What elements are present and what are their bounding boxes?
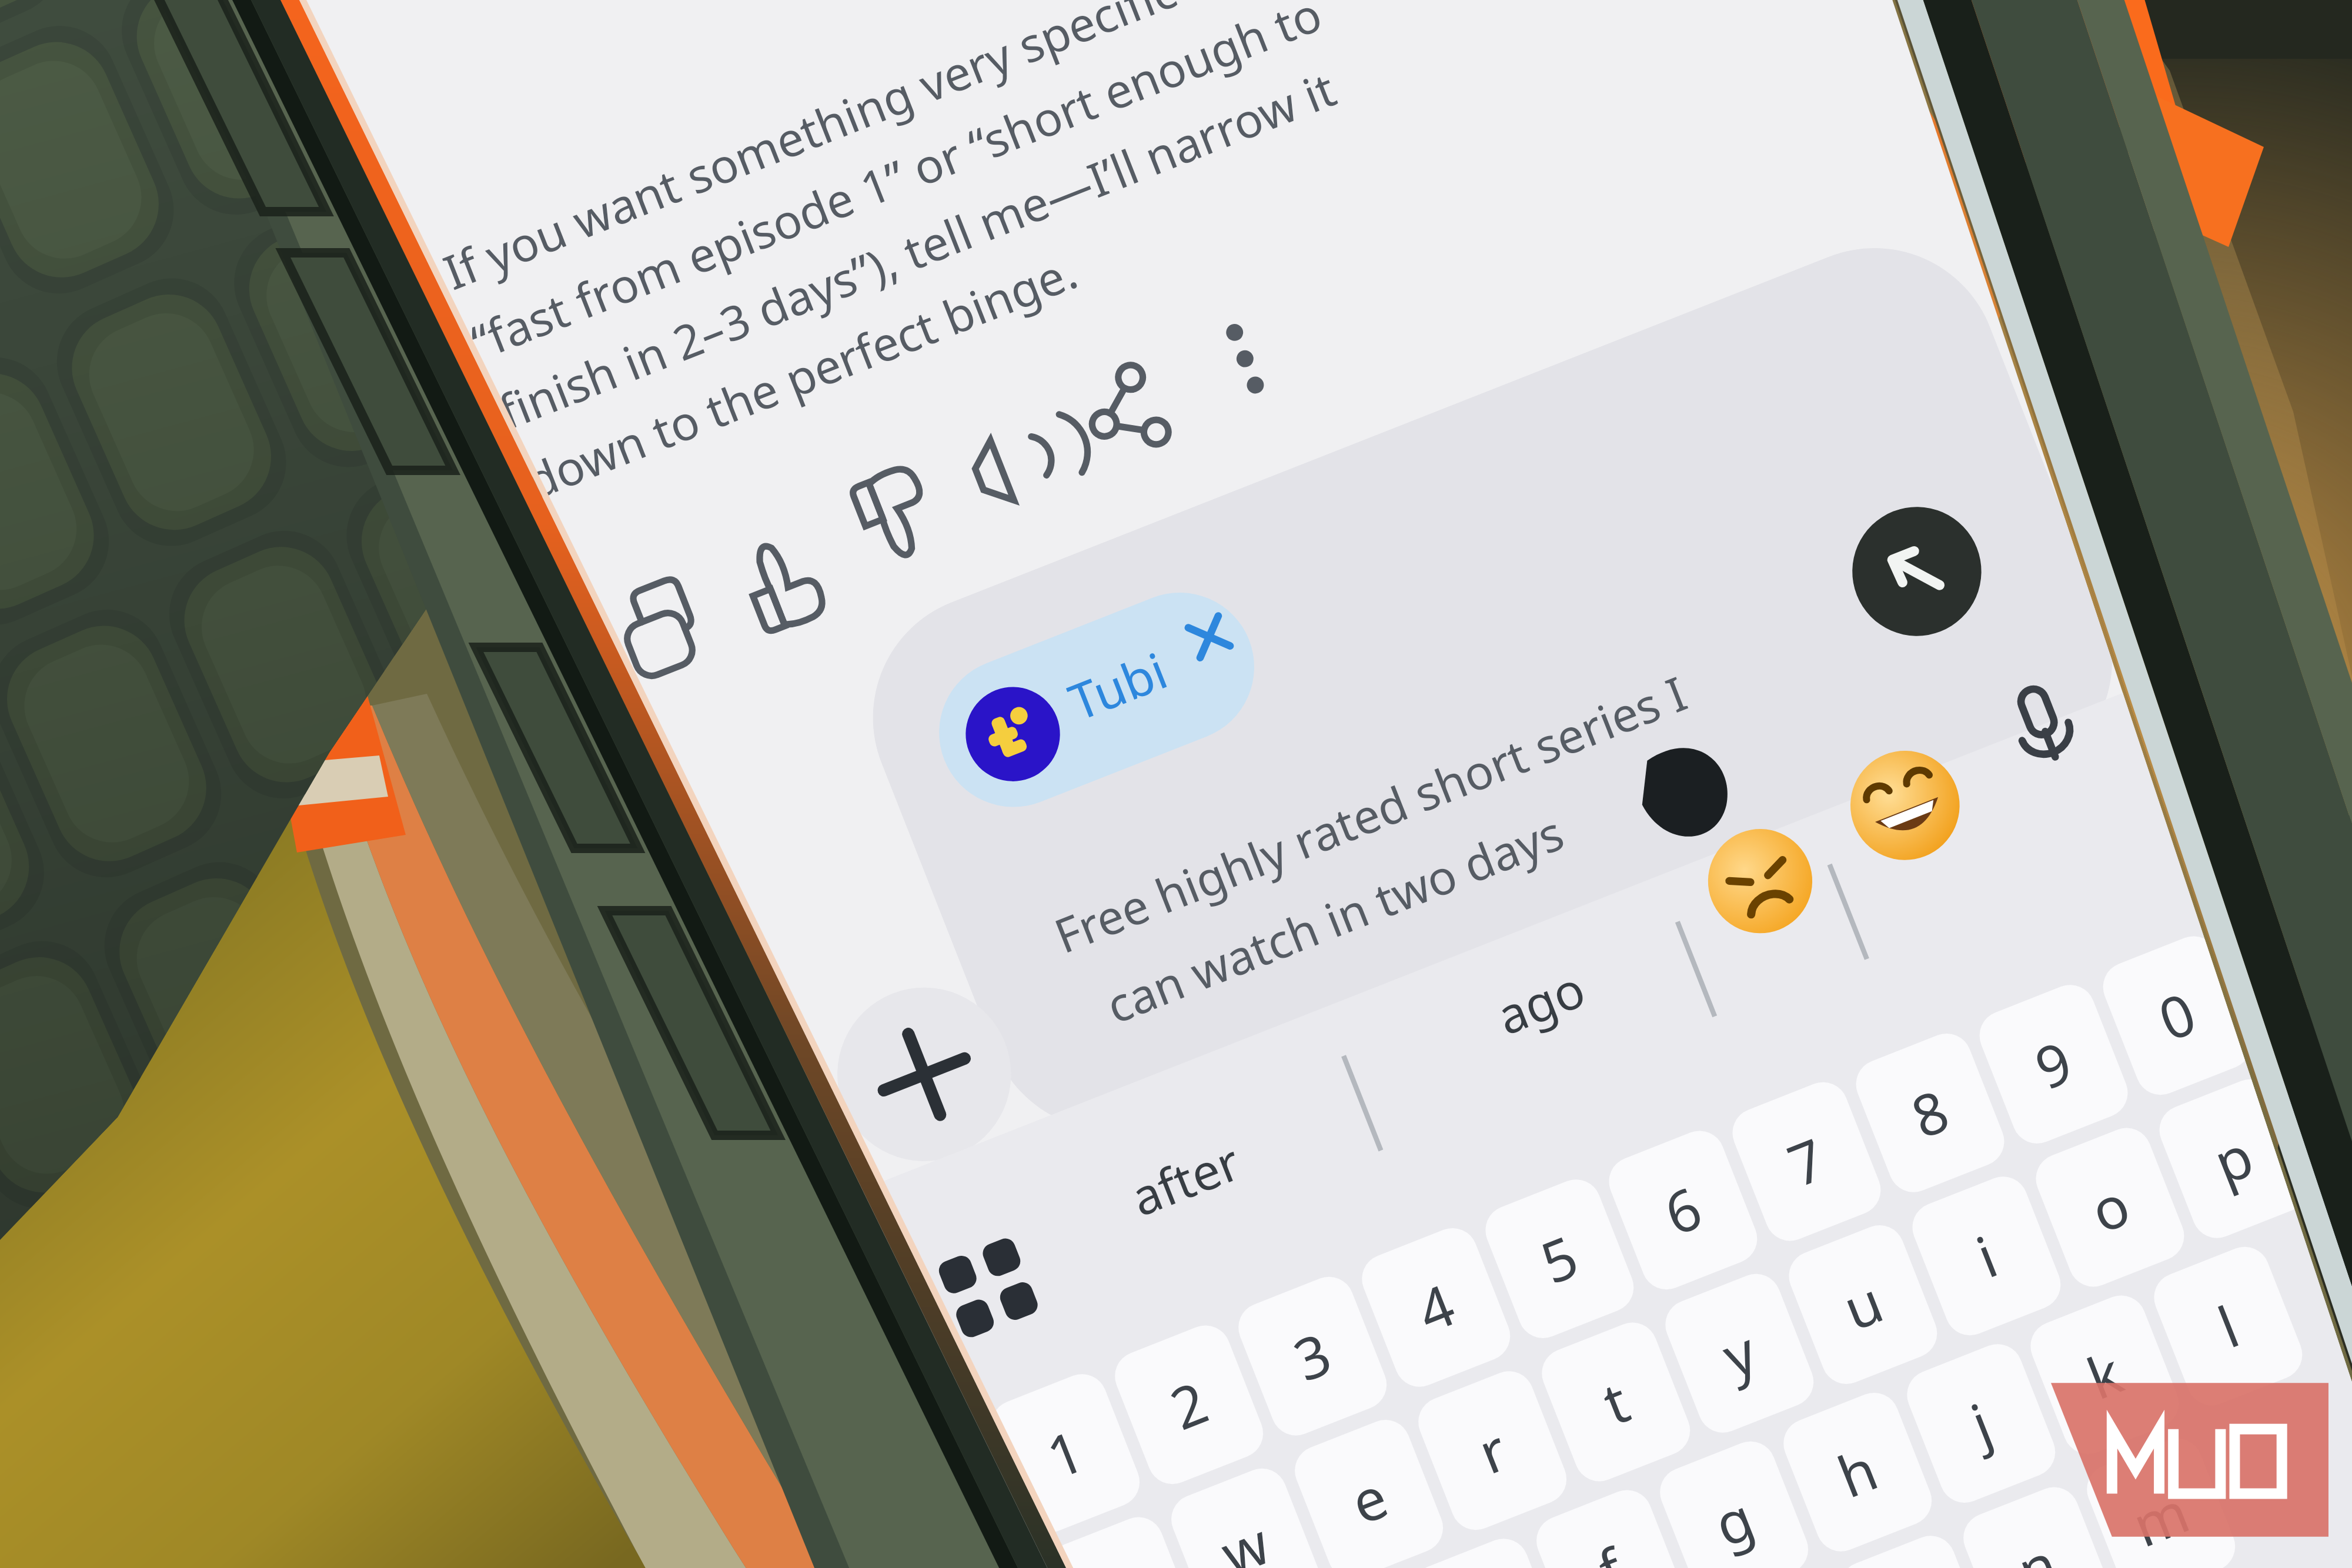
button[interactable]: Read aloud xyxy=(950,413,1061,525)
button[interactable]: Copy response xyxy=(602,574,713,686)
button[interactable]: Add attachment xyxy=(836,986,1013,1162)
button[interactable]: Switch keyboard layout xyxy=(930,1229,1047,1346)
button[interactable]: More options xyxy=(1189,303,1301,414)
button[interactable]: Bad response xyxy=(841,464,953,576)
button[interactable]: Voice input xyxy=(1984,668,2102,785)
button[interactable]: Send message xyxy=(1849,504,1984,639)
button[interactable]: Remove Tubi xyxy=(1171,593,1259,681)
button[interactable]: Share xyxy=(1071,357,1182,469)
button[interactable]: Good response xyxy=(724,523,836,635)
